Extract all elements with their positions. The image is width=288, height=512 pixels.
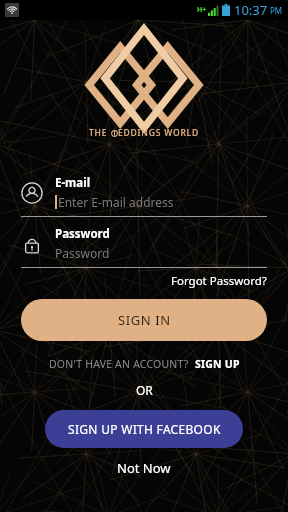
staticText: Password <box>55 226 110 242</box>
staticText: PM <box>270 5 283 16</box>
staticText: SIGN UP WITH FACEBOOK <box>68 421 221 437</box>
staticText: THE <box>89 127 111 139</box>
staticText: OR <box>136 382 153 398</box>
button[interactable]: Not Now <box>0 459 288 477</box>
staticText: EDDINGS WORLD <box>118 127 199 139</box>
staticText: 10:37 <box>234 1 268 19</box>
staticText: Not Now <box>117 459 171 477</box>
staticText: Password <box>55 245 110 261</box>
staticText: SIGN UP <box>195 357 240 371</box>
staticText: Forgot Password? <box>171 273 267 289</box>
button[interactable]: SIGN UP <box>195 357 240 371</box>
staticText: E-mail <box>55 175 91 191</box>
staticText: DON'T HAVE AN ACCOUNT? <box>49 357 189 371</box>
staticText: H+ <box>197 5 207 15</box>
button[interactable]: Forgot Password? <box>0 273 267 289</box>
button[interactable]: SIGN IN <box>21 299 267 341</box>
staticText: Enter E-mail address <box>58 194 174 210</box>
staticText: SIGN IN <box>118 311 171 329</box>
button[interactable]: SIGN UP WITH FACEBOOK <box>45 410 243 448</box>
